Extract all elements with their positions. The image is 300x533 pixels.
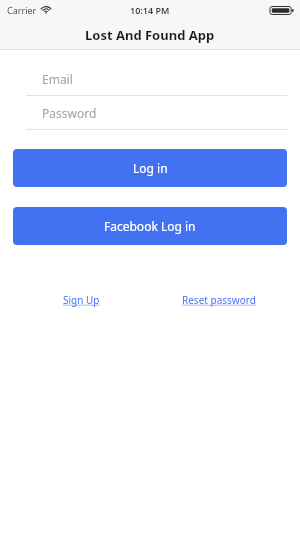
button[interactable]: Facebook Log in [13,207,287,245]
button[interactable]: Password [26,96,287,130]
staticText: Reset password [182,293,256,307]
button[interactable]: Email [26,62,287,96]
staticText: Lost And Found App [85,26,215,44]
staticText: Facebook Log in [104,218,196,234]
button[interactable]: Log in [13,149,287,187]
staticText: Password [42,105,97,121]
staticText: Carrier [7,4,37,16]
other: Battery full [270,5,294,16]
staticText: Sign Up [63,293,100,307]
staticText: 10:14 PM [130,4,170,16]
staticText: Log in [133,160,168,176]
button[interactable]: Reset password [176,290,262,310]
staticText: Email [42,71,73,87]
button[interactable]: Sign Up [57,290,106,310]
